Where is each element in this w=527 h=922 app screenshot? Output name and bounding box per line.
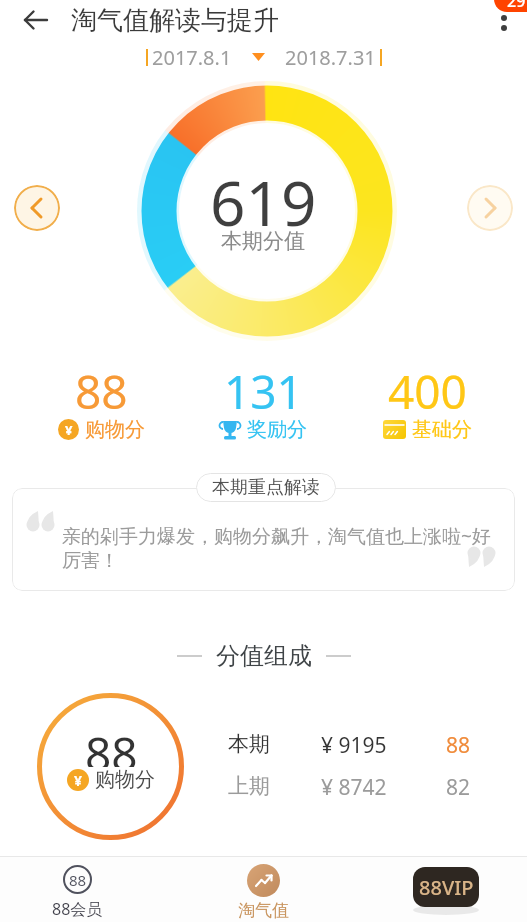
staticText: 88会员 <box>52 898 103 920</box>
staticText: 88VIP <box>419 874 474 901</box>
staticText: 88 <box>446 731 471 760</box>
staticText: 619 <box>210 160 317 234</box>
staticText: 本期重点解读 <box>212 476 320 499</box>
button[interactable] <box>14 4 58 36</box>
staticText: 88 <box>85 722 138 767</box>
staticText: 淘气值 <box>238 900 289 921</box>
button[interactable]: 88VIP <box>413 867 479 907</box>
staticText: ¥ 9195 <box>321 731 387 760</box>
staticText: 88 <box>69 870 87 890</box>
staticText: 购物分 <box>85 417 145 442</box>
button[interactable]: 基础分 <box>347 415 507 443</box>
staticText: 131 <box>224 360 303 414</box>
button[interactable]: 88 <box>37 865 117 922</box>
staticText: 88 <box>75 360 128 414</box>
staticText: 分值组成 <box>216 641 312 671</box>
staticText: 淘气值解读与提升 <box>71 4 279 37</box>
staticText: 奖励分 <box>247 417 307 442</box>
staticText: 82 <box>446 773 471 802</box>
staticText: 上期 <box>228 773 270 799</box>
button[interactable] <box>490 6 520 40</box>
staticText: 基础分 <box>412 417 472 442</box>
button[interactable]: 淘气值 <box>223 864 303 922</box>
button[interactable] <box>467 185 513 231</box>
staticText: 购物分 <box>95 767 155 792</box>
staticText: 本期分值 <box>221 228 305 254</box>
button[interactable]: 亲的剁手力爆发，购物分飙升，淘气值也上涨啦~好 厉害！ <box>12 488 515 591</box>
staticText: 400 <box>388 360 467 414</box>
staticText: 本期 <box>228 731 270 757</box>
button[interactable] <box>14 185 60 231</box>
button[interactable]: 奖励分 <box>183 415 343 443</box>
staticText: 亲的剁手力爆发，购物分飙升，淘气值也上涨啦~好 厉害！ <box>62 523 491 573</box>
staticText: 2018.7.31 <box>285 44 376 70</box>
staticText: ¥ 8742 <box>321 773 387 802</box>
button[interactable]: ¥ <box>21 415 181 443</box>
staticText: ¥ <box>65 421 73 439</box>
staticText: ¥ <box>74 771 83 790</box>
staticText: 29 <box>507 0 526 12</box>
staticText: 2017.8.1 <box>152 44 232 70</box>
